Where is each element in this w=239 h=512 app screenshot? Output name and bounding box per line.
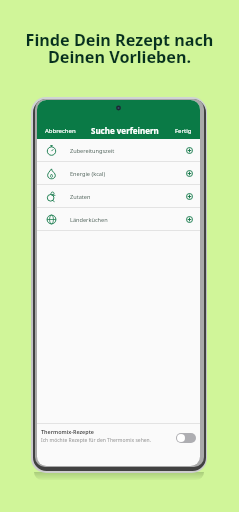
- button[interactable]: Fertig: [175, 127, 200, 135]
- staticText: Zutaten: [70, 193, 91, 201]
- button[interactable]: Zubereitungszeit: [37, 139, 200, 162]
- staticText: Thermomix-Rezepte: [41, 428, 94, 435]
- staticText: Energie (kcal): [70, 170, 106, 178]
- staticText: Fertig: [175, 127, 192, 135]
- staticText: Finde Dein Rezept nach Deinen Vorlieben.: [0, 29, 239, 68]
- staticText: Länderküchen: [70, 216, 108, 224]
- button[interactable]: Thermomix-Rezepte: [37, 423, 200, 465]
- staticText: Suche verfeinern: [91, 125, 159, 136]
- staticText: Ich möchte Rezepte für den Thermomix seh…: [41, 437, 152, 444]
- staticText: Abbrechen: [45, 127, 76, 135]
- button[interactable]: Zutaten: [37, 185, 200, 208]
- button[interactable]: Abbrechen: [37, 127, 76, 135]
- button[interactable]: Energie (kcal): [37, 162, 200, 185]
- button[interactable]: [176, 433, 196, 443]
- button[interactable]: Länderküchen: [37, 208, 200, 231]
- staticText: Zubereitungszeit: [70, 147, 115, 155]
